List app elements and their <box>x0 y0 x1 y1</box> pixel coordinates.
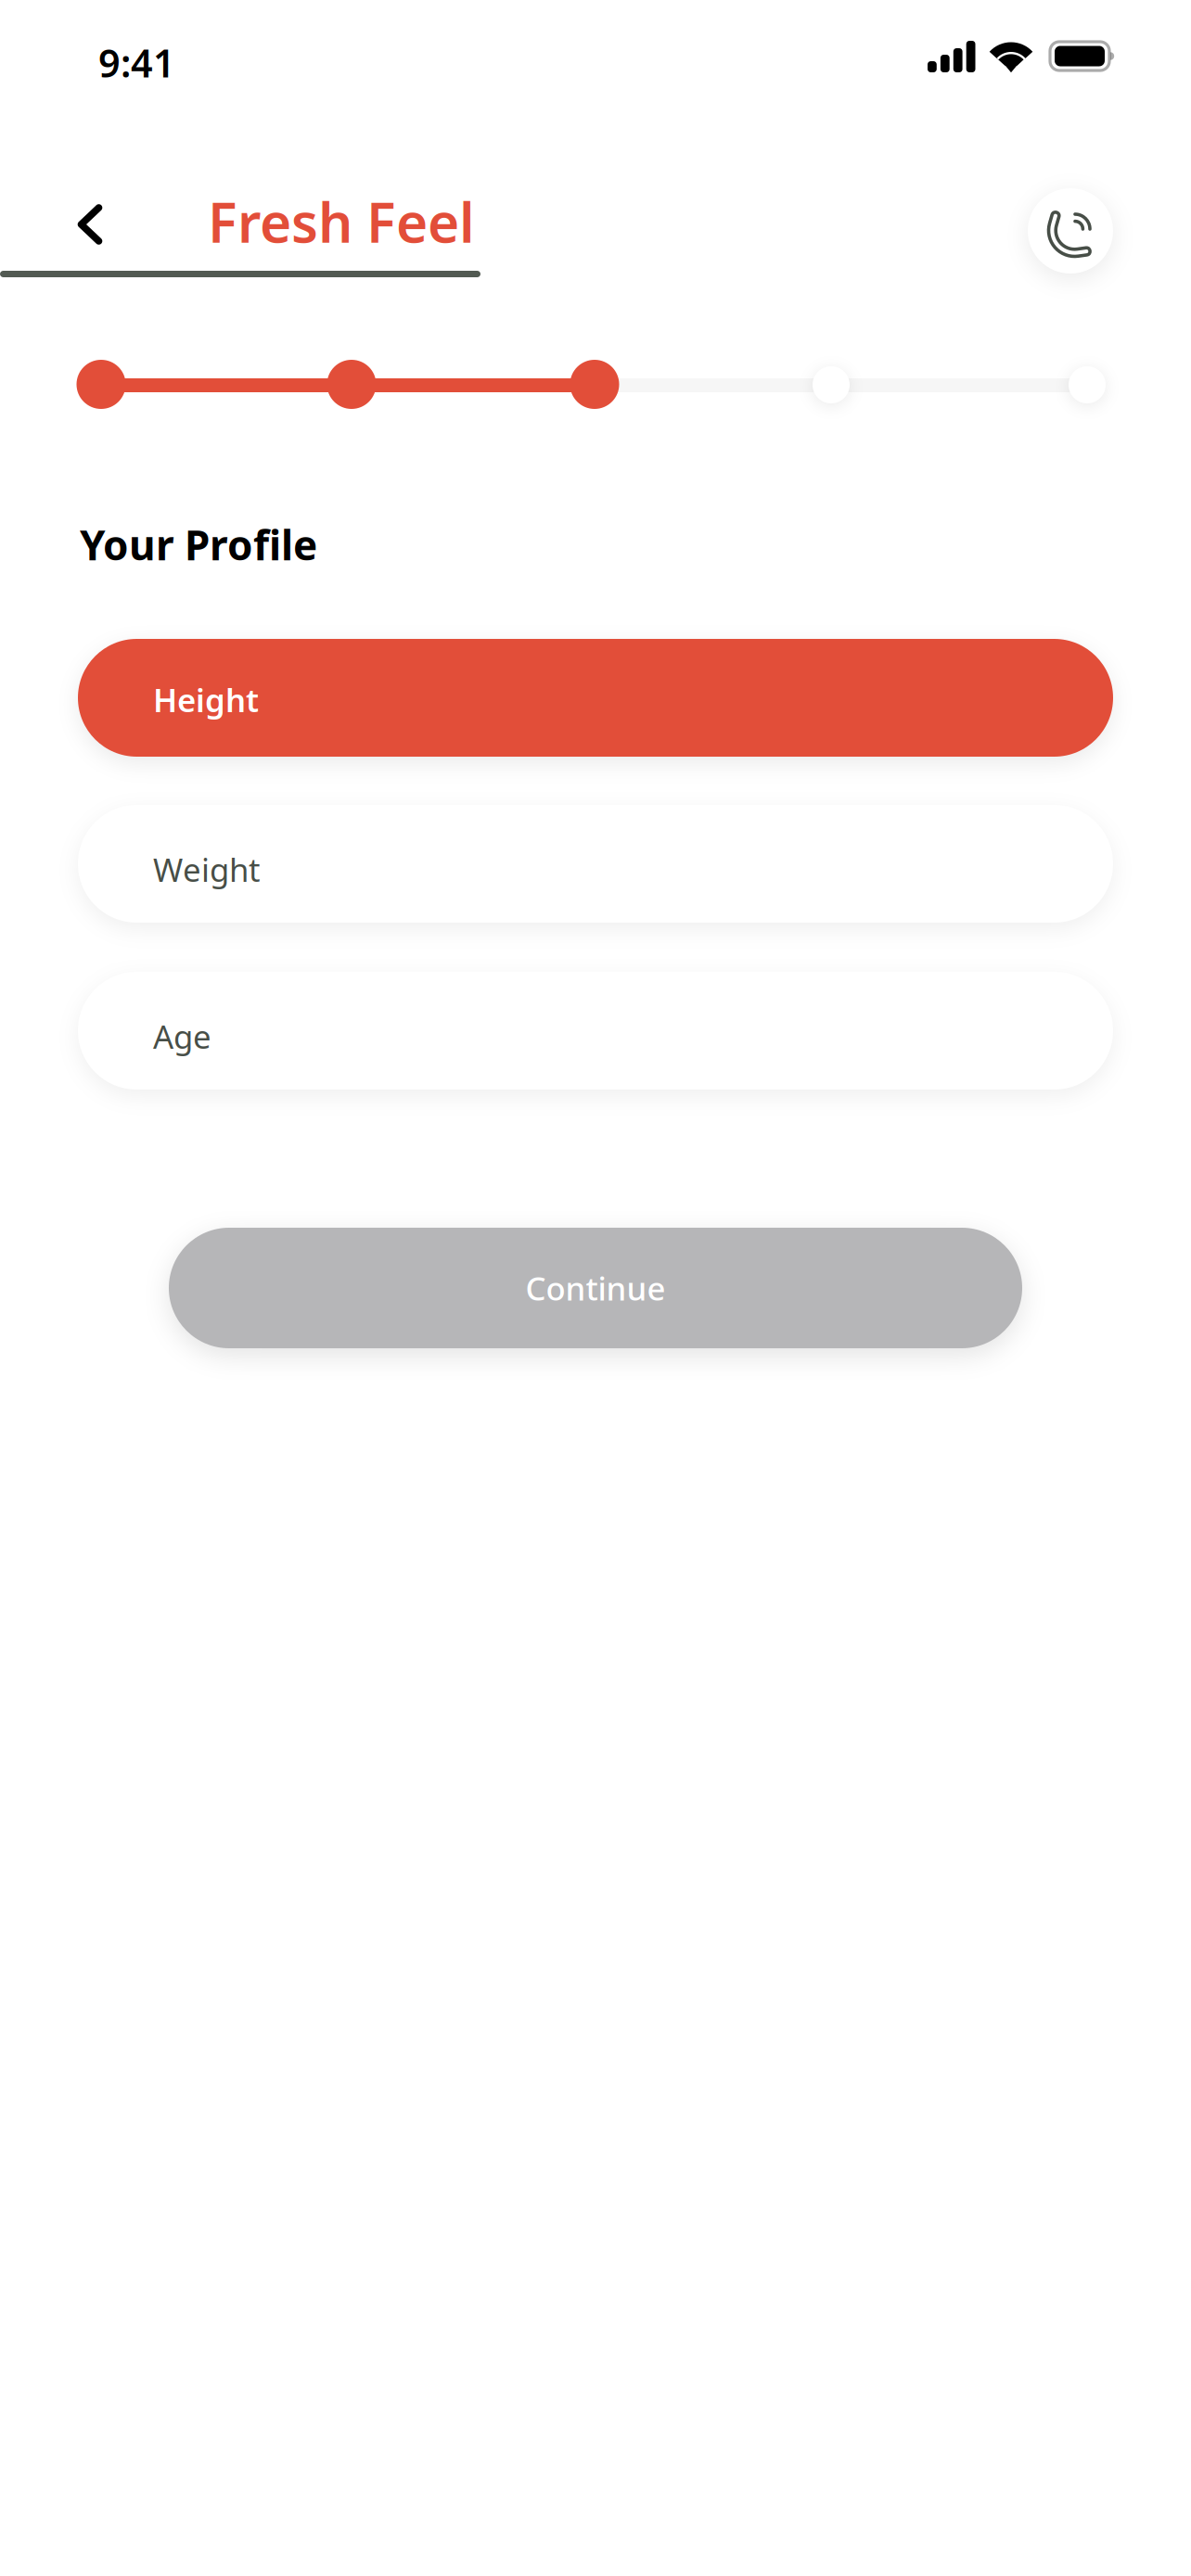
staticText: Fresh Feel <box>208 185 475 258</box>
staticText: Your Profile <box>80 517 317 572</box>
button[interactable]: Continue <box>169 1228 1022 1348</box>
staticText: Weight <box>153 848 261 891</box>
button[interactable]: Back <box>45 180 134 269</box>
staticText: Height <box>153 678 259 721</box>
button[interactable]: Weight <box>78 805 1113 923</box>
button[interactable]: Age <box>78 972 1113 1090</box>
button[interactable]: Call <box>1028 188 1113 274</box>
button[interactable]: Height <box>78 639 1113 757</box>
staticText: 9:41 <box>98 37 175 88</box>
staticText: Continue <box>525 1267 666 1309</box>
staticText: Age <box>153 1015 211 1058</box>
